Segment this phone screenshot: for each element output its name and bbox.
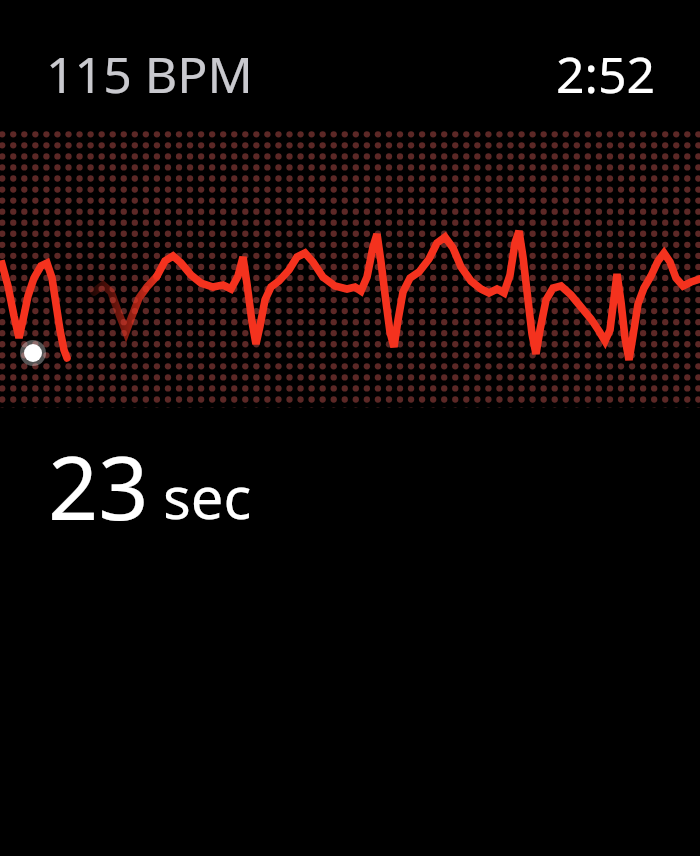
button[interactable]: ECG waveform, recording: [0, 0, 700, 856]
staticText: 115 BPM: [46, 40, 253, 108]
staticText: 2:52: [556, 40, 656, 108]
button[interactable]: 23: [48, 426, 252, 546]
staticText: 23: [48, 426, 149, 546]
staticText: sec: [163, 457, 252, 536]
